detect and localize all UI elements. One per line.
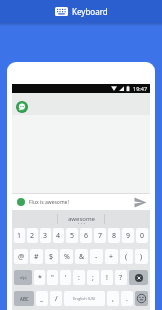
staticText: % [64, 252, 70, 262]
button[interactable]: - [90, 249, 103, 264]
staticText: : [78, 273, 80, 283]
staticText: $ [49, 252, 54, 262]
button[interactable]: 8 [108, 228, 120, 243]
staticText: @ [18, 252, 25, 262]
staticText: ? [119, 273, 123, 283]
staticText: 8 [112, 231, 117, 241]
staticText: 5 [70, 231, 75, 241]
staticText: awesome [68, 215, 95, 223]
staticText: ) [140, 252, 143, 262]
staticText: 0 [140, 231, 145, 241]
staticText: , [112, 294, 114, 304]
button[interactable]: " [47, 270, 58, 285]
staticText: Keyboard [72, 6, 108, 17]
staticText: / [55, 294, 58, 304]
staticText: 6 [84, 231, 89, 241]
button[interactable]: : [73, 270, 85, 285]
staticText: 4 [56, 231, 61, 241]
button[interactable]: * [34, 270, 45, 285]
button[interactable]: ; [87, 270, 99, 285]
button[interactable]: 0 [136, 228, 148, 243]
staticText: - [95, 252, 98, 262]
staticText: ABC [20, 296, 29, 302]
staticText: 2 [30, 231, 35, 241]
staticText: ; [92, 273, 94, 283]
staticText: 19:47 [133, 85, 148, 92]
button[interactable]: ) [135, 249, 148, 264]
button[interactable]: @ [14, 249, 28, 264]
button[interactable]: . [121, 291, 133, 306]
button[interactable]: Keyboard [0, 0, 162, 23]
button[interactable]: 1 [14, 228, 25, 243]
staticText: English (US) [73, 296, 96, 301]
staticText: * [38, 273, 42, 283]
staticText: 3 [43, 231, 48, 241]
button[interactable]: + [105, 249, 118, 264]
button[interactable]: & [75, 249, 88, 264]
button[interactable]: ( [120, 249, 133, 264]
button[interactable]: =\< [14, 270, 32, 285]
staticText: _ [40, 294, 44, 304]
staticText: . [126, 294, 128, 304]
button[interactable]: ? [115, 270, 127, 285]
button[interactable]: ABC [14, 291, 34, 306]
staticText: & [79, 252, 85, 262]
button[interactable] [129, 270, 148, 285]
button[interactable]: , [107, 291, 119, 306]
button[interactable]: 5 [66, 228, 78, 243]
staticText: ! [106, 273, 108, 283]
button[interactable]: ' [60, 270, 71, 285]
button[interactable]: English (US) [64, 291, 105, 306]
button[interactable]: 3 [40, 228, 51, 243]
button[interactable]: 9 [122, 228, 134, 243]
button[interactable]: _ [36, 291, 48, 306]
button[interactable] [135, 291, 148, 306]
button[interactable]: % [60, 249, 73, 264]
button[interactable]: 2 [27, 228, 38, 243]
staticText: # [34, 252, 39, 262]
button[interactable]: / [50, 291, 62, 306]
staticText: =\< [20, 275, 27, 281]
button[interactable]: # [30, 249, 43, 264]
button[interactable]: 7 [94, 228, 106, 243]
button[interactable]: 6 [80, 228, 92, 243]
staticText: 9 [126, 231, 131, 241]
staticText: " [51, 273, 54, 283]
staticText: Flux is awesome! [29, 199, 69, 206]
staticText: 7 [98, 231, 103, 241]
staticText: ' [65, 273, 67, 283]
button[interactable]: ! [101, 270, 113, 285]
button[interactable]: Flux is awesome! [12, 194, 150, 210]
staticText: 1 [17, 231, 22, 241]
staticText: + [109, 252, 114, 262]
button[interactable]: $ [45, 249, 58, 264]
staticText: ( [125, 252, 128, 262]
button[interactable]: 4 [53, 228, 64, 243]
